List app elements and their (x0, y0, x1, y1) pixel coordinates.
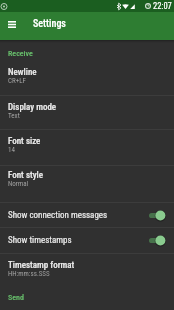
staticText: Settings (33, 18, 66, 30)
staticText: HH:mm:ss.SSS (8, 270, 50, 278)
staticText: Receive (8, 49, 33, 58)
button[interactable]: Newline (0, 59, 174, 95)
staticText: CR+LF (8, 77, 26, 85)
staticText: Display mode (8, 102, 57, 113)
staticText: Send (8, 293, 24, 302)
button[interactable]: Show timestamps (0, 228, 174, 253)
staticText: Font style (8, 170, 44, 181)
staticText: Font size (8, 136, 41, 147)
button[interactable]: Font style (0, 166, 174, 202)
staticText: Show timestamps (8, 235, 149, 246)
button[interactable]: Open navigation drawer (0, 12, 24, 40)
staticText: Newline (8, 67, 37, 78)
staticText: Show connection messages (8, 210, 149, 221)
button[interactable]: Show connection messages (0, 203, 174, 227)
button[interactable]: Font size (0, 130, 174, 165)
button[interactable]: Timestamp format (0, 254, 174, 287)
staticText: Normal (8, 180, 29, 188)
staticText: 22:07 (153, 1, 172, 11)
staticText: 14 (8, 146, 15, 154)
staticText: Text (8, 112, 20, 120)
staticText: Timestamp format (8, 260, 75, 271)
button[interactable]: Display mode (0, 96, 174, 129)
